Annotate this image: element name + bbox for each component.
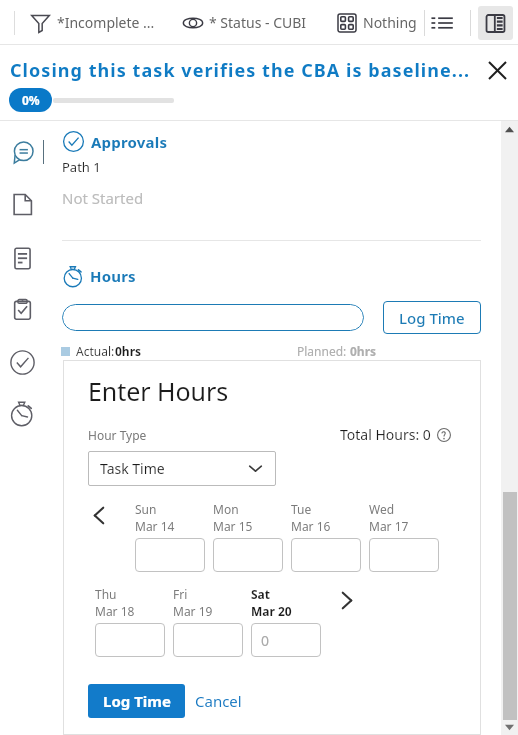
staticText: Tue bbox=[291, 501, 312, 517]
staticText: Actual: bbox=[76, 343, 115, 359]
button[interactable]: Approvals bbox=[8, 348, 36, 376]
button[interactable]: Files bbox=[8, 190, 36, 218]
button[interactable]: Nothing bbox=[331, 0, 423, 45]
button[interactable] bbox=[62, 304, 364, 331]
button[interactable]: Close bbox=[484, 57, 510, 83]
staticText: Task Time bbox=[100, 459, 165, 478]
staticText: 0 bbox=[261, 631, 270, 650]
button[interactable]: *Incomplete ... bbox=[15, 0, 161, 45]
button[interactable] bbox=[95, 623, 165, 657]
staticText: Sat bbox=[251, 586, 271, 602]
staticText: Thu bbox=[95, 586, 117, 602]
button[interactable] bbox=[291, 538, 361, 572]
button[interactable]: * Status - CUBI bbox=[176, 0, 313, 45]
staticText: Mar 16 bbox=[291, 518, 331, 534]
button[interactable]: Next week bbox=[333, 587, 359, 613]
button[interactable]: Log Time bbox=[88, 684, 185, 718]
button[interactable] bbox=[213, 538, 283, 572]
staticText: Log Time bbox=[399, 308, 465, 328]
staticText: 0hrs bbox=[115, 343, 142, 359]
staticText: Mar 15 bbox=[213, 518, 253, 534]
staticText: 0% bbox=[22, 92, 40, 108]
staticText: Mar 17 bbox=[369, 518, 409, 534]
staticText: Log Time bbox=[103, 691, 171, 711]
staticText: Mar 20 bbox=[251, 603, 292, 619]
button[interactable]: Previous week bbox=[86, 502, 112, 528]
staticText: Mar 18 bbox=[95, 603, 135, 619]
staticText: Approvals bbox=[91, 132, 168, 152]
staticText: Mar 19 bbox=[173, 603, 213, 619]
button[interactable]: Comments bbox=[8, 138, 36, 166]
staticText: Path 1 bbox=[62, 158, 101, 176]
staticText: Fri bbox=[173, 586, 188, 602]
button[interactable]: List view bbox=[425, 6, 459, 40]
staticText: Enter Hours bbox=[88, 374, 229, 408]
staticText: Planned: bbox=[297, 343, 350, 359]
button[interactable]: Notes bbox=[8, 244, 36, 272]
staticText: Not Started bbox=[62, 188, 144, 208]
staticText: Sun bbox=[135, 501, 157, 517]
button[interactable]: Split view bbox=[478, 6, 513, 40]
staticText: Cancel bbox=[195, 691, 242, 711]
staticText: Hours bbox=[90, 266, 136, 286]
button[interactable]: Cancel bbox=[189, 685, 248, 717]
staticText: *Incomplete ... bbox=[57, 13, 155, 32]
button[interactable]: Task Time bbox=[88, 451, 276, 486]
button[interactable] bbox=[173, 623, 243, 657]
button[interactable]: 0 bbox=[251, 623, 321, 657]
button[interactable] bbox=[135, 538, 205, 572]
button[interactable] bbox=[369, 538, 439, 572]
staticText: 0hrs bbox=[350, 343, 377, 359]
staticText: Hour Type bbox=[88, 427, 147, 443]
staticText: * Status - CUBI bbox=[209, 13, 307, 32]
staticText: Wed bbox=[369, 501, 395, 517]
button[interactable]: Hours bbox=[8, 398, 36, 426]
staticText: Total Hours: 0 bbox=[340, 425, 431, 444]
staticText: Mar 14 bbox=[135, 518, 175, 534]
staticText: Mon bbox=[213, 501, 239, 517]
button[interactable]: Log Time bbox=[383, 301, 481, 334]
staticText: Nothing bbox=[363, 13, 417, 32]
staticText: Closing this task verifies the CBA is ba… bbox=[10, 58, 484, 83]
button[interactable]: Tasks bbox=[8, 295, 36, 323]
